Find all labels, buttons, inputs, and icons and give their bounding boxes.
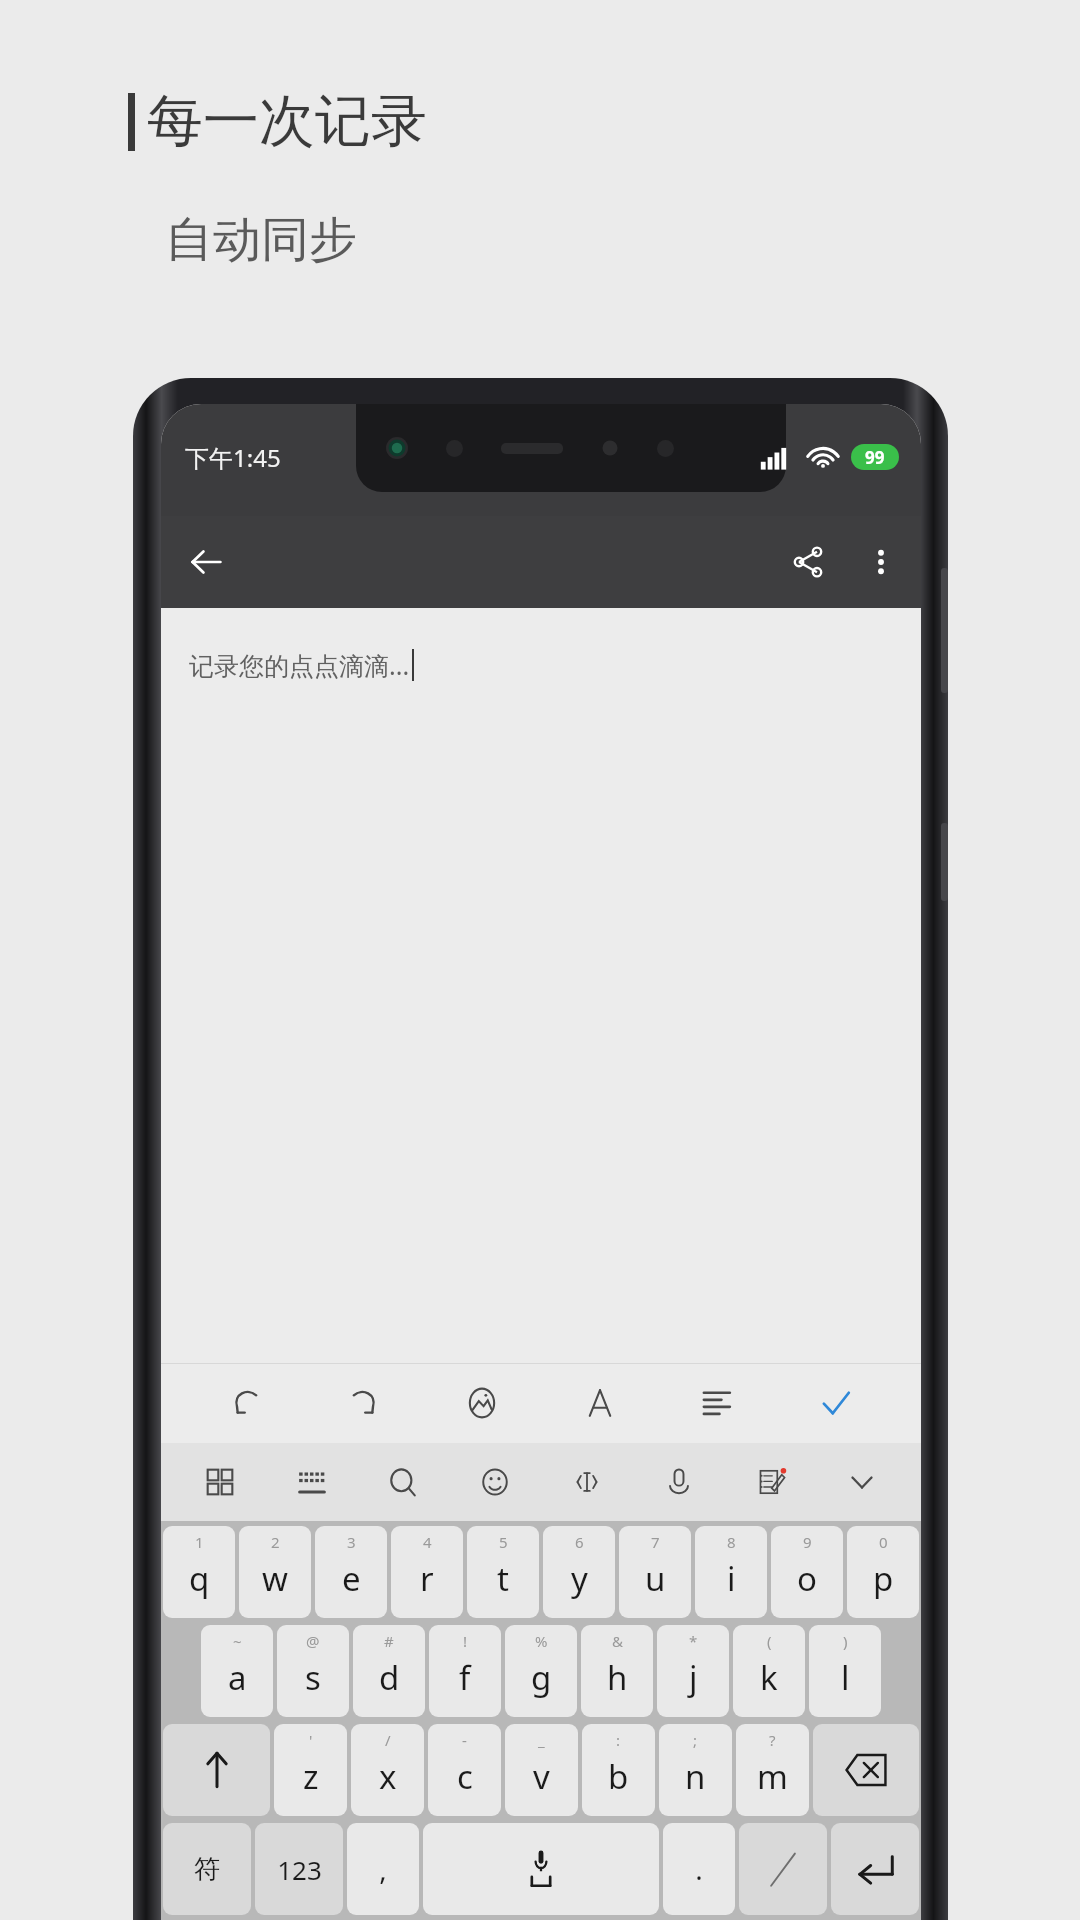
staticText: 记录您的点点滴滴... bbox=[189, 648, 410, 682]
button[interactable]: More options bbox=[853, 534, 909, 590]
button[interactable]: # bbox=[353, 1625, 425, 1717]
button[interactable]: Back bbox=[175, 531, 237, 593]
button[interactable]: ; bbox=[659, 1724, 732, 1816]
button[interactable]: - bbox=[428, 1724, 501, 1816]
staticText: w bbox=[262, 1556, 288, 1601]
staticText: e bbox=[342, 1556, 361, 1601]
staticText: / bbox=[385, 1730, 391, 1750]
staticText: g bbox=[531, 1655, 552, 1700]
staticText: t bbox=[497, 1556, 509, 1601]
button[interactable]: Backspace bbox=[813, 1724, 919, 1816]
staticText: , bbox=[379, 1850, 387, 1888]
staticText: x bbox=[379, 1754, 397, 1799]
button[interactable]: 符 bbox=[163, 1823, 251, 1915]
button[interactable]: Voice input bbox=[646, 1449, 712, 1515]
button[interactable]: 6 bbox=[543, 1526, 615, 1618]
button[interactable]: ! bbox=[429, 1625, 501, 1717]
staticText: : bbox=[616, 1730, 621, 1750]
staticText: k bbox=[760, 1655, 778, 1700]
staticText: 123 bbox=[277, 1852, 322, 1887]
button[interactable]: Space bbox=[423, 1823, 659, 1915]
button[interactable]: % bbox=[505, 1625, 577, 1717]
button[interactable]: 8 bbox=[695, 1526, 767, 1618]
staticText: r bbox=[420, 1556, 434, 1601]
button[interactable]: @ bbox=[277, 1625, 349, 1717]
button[interactable]: ) bbox=[809, 1625, 881, 1717]
staticText: * bbox=[689, 1631, 698, 1651]
staticText: d bbox=[379, 1655, 400, 1700]
staticText: p bbox=[873, 1556, 894, 1601]
staticText: h bbox=[607, 1655, 628, 1700]
button[interactable]: ( bbox=[733, 1625, 805, 1717]
staticText: 1 bbox=[195, 1532, 204, 1552]
button[interactable]: Hide keyboard bbox=[829, 1449, 895, 1515]
staticText: b bbox=[608, 1754, 629, 1799]
button[interactable]: ? bbox=[736, 1724, 809, 1816]
button[interactable]: Apps bbox=[187, 1449, 253, 1515]
staticText: ( bbox=[767, 1631, 772, 1651]
button[interactable]: 9 bbox=[771, 1526, 843, 1618]
staticText: n bbox=[685, 1754, 706, 1799]
staticText: j bbox=[689, 1655, 698, 1700]
staticText: u bbox=[645, 1556, 666, 1601]
button[interactable]: & bbox=[581, 1625, 653, 1717]
button[interactable]: . bbox=[663, 1823, 735, 1915]
button[interactable]: 7 bbox=[619, 1526, 691, 1618]
staticText: 9 bbox=[803, 1532, 812, 1552]
button[interactable]: 5 bbox=[467, 1526, 539, 1618]
staticText: 6 bbox=[575, 1532, 584, 1552]
button[interactable]: 123 bbox=[255, 1823, 343, 1915]
button[interactable]: Enter bbox=[831, 1823, 919, 1915]
staticText: q bbox=[189, 1556, 210, 1601]
button[interactable]: Search bbox=[370, 1449, 436, 1515]
staticText: ? bbox=[769, 1730, 776, 1750]
button[interactable]: Shift bbox=[163, 1724, 270, 1816]
staticText: i bbox=[727, 1556, 736, 1601]
staticText: 4 bbox=[423, 1532, 432, 1552]
button[interactable]: Keyboard layout bbox=[279, 1449, 345, 1515]
button[interactable]: Redo bbox=[331, 1370, 397, 1436]
button[interactable]: Language bbox=[739, 1823, 827, 1915]
staticText: c bbox=[457, 1754, 473, 1799]
button[interactable]: Handwriting bbox=[737, 1449, 803, 1515]
button[interactable]: Cursor move bbox=[554, 1449, 620, 1515]
staticText: o bbox=[797, 1556, 817, 1601]
staticText: 下午1:45 bbox=[185, 441, 281, 474]
button[interactable]: _ bbox=[505, 1724, 578, 1816]
button[interactable]: 2 bbox=[239, 1526, 311, 1618]
button[interactable]: Alignment bbox=[685, 1370, 751, 1436]
button[interactable]: 0 bbox=[847, 1526, 919, 1618]
staticText: @ bbox=[306, 1631, 320, 1651]
staticText: 2 bbox=[271, 1532, 280, 1552]
button[interactable]: : bbox=[582, 1724, 655, 1816]
button[interactable]: Insert image bbox=[449, 1370, 515, 1436]
staticText: - bbox=[462, 1730, 467, 1750]
staticText: 自动同步 bbox=[165, 210, 357, 270]
staticText: 5 bbox=[499, 1532, 508, 1552]
staticText: l bbox=[841, 1655, 850, 1700]
button[interactable]: Emoji bbox=[462, 1449, 528, 1515]
button[interactable]: 1 bbox=[163, 1526, 235, 1618]
staticText: m bbox=[757, 1754, 788, 1799]
staticText: . bbox=[695, 1850, 703, 1888]
button[interactable]: Done bbox=[803, 1370, 869, 1436]
button[interactable]: Share bbox=[777, 531, 839, 593]
staticText: 符 bbox=[194, 1853, 220, 1886]
staticText: z bbox=[303, 1754, 319, 1799]
button[interactable]: ~ bbox=[201, 1625, 273, 1717]
button[interactable]: / bbox=[351, 1724, 424, 1816]
button[interactable]: ' bbox=[274, 1724, 347, 1816]
staticText: y bbox=[571, 1556, 588, 1601]
staticText: f bbox=[459, 1655, 471, 1700]
staticText: ! bbox=[463, 1631, 468, 1651]
button[interactable]: , bbox=[347, 1823, 419, 1915]
button[interactable]: 4 bbox=[391, 1526, 463, 1618]
staticText: s bbox=[305, 1655, 321, 1700]
button[interactable]: 3 bbox=[315, 1526, 387, 1618]
button[interactable]: Undo bbox=[213, 1370, 279, 1436]
button[interactable]: * bbox=[657, 1625, 729, 1717]
staticText: # bbox=[384, 1631, 394, 1651]
staticText: 7 bbox=[651, 1532, 660, 1552]
staticText: a bbox=[228, 1655, 247, 1700]
button[interactable]: Text format bbox=[567, 1370, 633, 1436]
